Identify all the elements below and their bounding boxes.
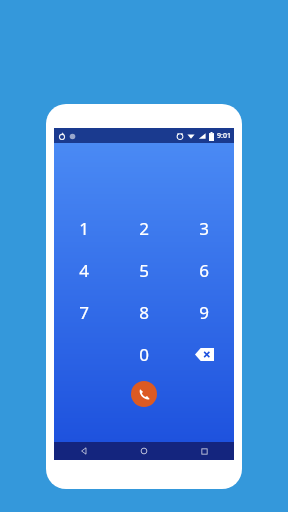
staticText: 9 — [199, 301, 209, 324]
staticText: 3 — [199, 217, 209, 240]
button[interactable]: 9 — [174, 291, 234, 333]
staticText: 2 — [139, 217, 149, 240]
button[interactable]: 6 — [174, 249, 234, 291]
button[interactable]: 7 — [54, 291, 114, 333]
button[interactable]: 0 — [114, 333, 174, 375]
button[interactable]: 4 — [54, 249, 114, 291]
staticText: 0 — [139, 343, 149, 366]
button[interactable]: 8 — [114, 291, 174, 333]
button[interactable]: Recent apps — [174, 442, 234, 460]
button[interactable]: 1 — [54, 207, 114, 249]
button[interactable]: 3 — [174, 207, 234, 249]
button[interactable]: Home — [114, 442, 174, 460]
button[interactable]: Back — [54, 442, 114, 460]
button[interactable]: 5 — [114, 249, 174, 291]
staticText: 6 — [199, 259, 209, 282]
staticText: 9:01 — [217, 131, 231, 141]
button[interactable]: 2 — [114, 207, 174, 249]
staticText: 5 — [139, 259, 149, 282]
staticText: 4 — [79, 259, 89, 282]
button[interactable]: Backspace — [174, 333, 234, 375]
staticText: 7 — [79, 301, 89, 324]
staticText: 1 — [79, 217, 89, 240]
button[interactable]: Call — [131, 381, 157, 407]
staticText: 8 — [139, 301, 149, 324]
